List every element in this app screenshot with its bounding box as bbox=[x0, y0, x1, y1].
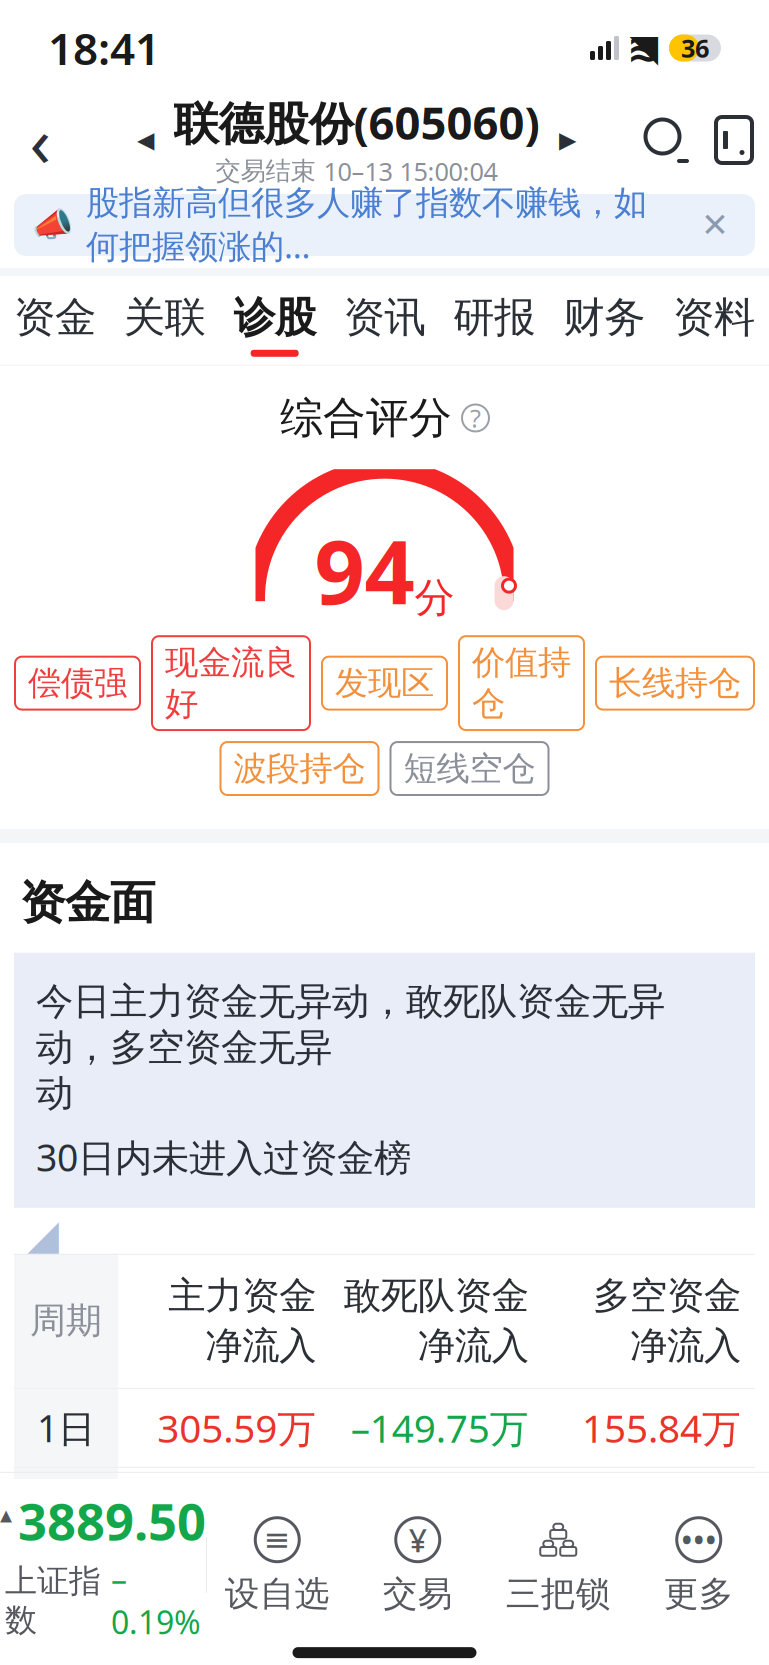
staticText: 305.59万 bbox=[157, 1402, 316, 1453]
staticText: 5日 bbox=[37, 1561, 95, 1611]
button[interactable]: Back bbox=[0, 100, 80, 180]
staticText: 三把锁 bbox=[506, 1573, 611, 1615]
staticText: –0.19% bbox=[111, 1558, 201, 1643]
staticText: 周期 bbox=[30, 1299, 102, 1343]
staticText: 1日 bbox=[37, 1403, 95, 1453]
button[interactable]: 诊股 bbox=[220, 276, 330, 365]
staticText: 研报 bbox=[453, 292, 535, 343]
staticText: ≡ bbox=[264, 1521, 291, 1558]
staticText: 综合评分 bbox=[280, 392, 452, 444]
staticText: ¥ bbox=[409, 1518, 427, 1561]
staticText: ◢ bbox=[18, 1208, 59, 1268]
staticText: 交易 bbox=[383, 1573, 453, 1615]
staticText: ✕ bbox=[701, 206, 729, 244]
button[interactable]: About score bbox=[462, 404, 489, 431]
staticText: 净流入 bbox=[205, 1323, 316, 1369]
staticText: 2555.11万 bbox=[560, 1560, 741, 1611]
staticText: ◥ bbox=[629, 27, 658, 69]
button[interactable]: 资金 bbox=[0, 276, 110, 365]
staticText: 90.79万 bbox=[392, 1639, 529, 1665]
staticText: 36 bbox=[681, 31, 709, 65]
staticText: ‹ bbox=[29, 94, 50, 186]
button[interactable]: Search bbox=[633, 104, 699, 176]
staticText: 1686.86万 bbox=[560, 1481, 741, 1532]
button[interactable]: Close banner bbox=[693, 203, 737, 247]
staticText: 关联 bbox=[124, 292, 206, 343]
button[interactable]: 财务 bbox=[549, 276, 659, 365]
staticText: 敢死队资金 bbox=[344, 1273, 529, 1319]
staticText: ◀ bbox=[137, 127, 154, 153]
staticText: –159.25万 bbox=[351, 1560, 529, 1611]
staticText: 联德股份(605060) bbox=[173, 92, 539, 152]
staticText: 资料 bbox=[673, 292, 755, 343]
staticText: ▶ bbox=[559, 127, 576, 153]
staticText: 10–13 15:00:04 bbox=[323, 154, 497, 188]
staticText: 2714.36万 bbox=[135, 1560, 316, 1611]
staticText: 长线持仓 bbox=[609, 663, 741, 703]
staticText: 上证指数 bbox=[5, 1561, 101, 1640]
staticText: 1.05亿 bbox=[201, 1639, 316, 1665]
staticText: 94 bbox=[314, 512, 414, 629]
staticText: 30日内未进入过资金榜 bbox=[36, 1132, 411, 1182]
staticText: 净流入 bbox=[418, 1323, 529, 1369]
staticText: –149.75万 bbox=[351, 1402, 529, 1453]
staticText: 短线空仓 bbox=[403, 748, 535, 789]
staticText: 财务 bbox=[563, 292, 645, 343]
staticText: 主力资金 bbox=[168, 1273, 316, 1319]
staticText: 资金面 bbox=[20, 875, 155, 931]
button[interactable]: Previous stock bbox=[117, 105, 173, 175]
staticText: ≋ bbox=[627, 25, 661, 71]
button[interactable]: 资讯 bbox=[330, 276, 439, 365]
staticText: 资讯 bbox=[343, 292, 425, 343]
staticText: 股指新高但很多人赚了指数不赚钱，如何把握领涨的… bbox=[86, 182, 647, 268]
staticText: 155.84万 bbox=[582, 1402, 741, 1453]
staticText: 波段持仓 bbox=[233, 748, 365, 789]
staticText: ▴ bbox=[0, 1501, 12, 1528]
staticText: 诊股 bbox=[234, 292, 316, 343]
button[interactable]: 关联 bbox=[110, 276, 220, 365]
staticText: 1671.76万 bbox=[135, 1481, 316, 1532]
staticText: 净流入 bbox=[630, 1323, 741, 1369]
staticText: ••• bbox=[681, 1518, 717, 1561]
staticText: 资金 bbox=[14, 292, 96, 343]
button[interactable]: 上证指数 3889.50 bbox=[0, 1487, 206, 1643]
staticText: 📣 bbox=[32, 206, 74, 244]
button[interactable]: Next stock bbox=[539, 105, 595, 175]
staticText: 偿债强 bbox=[28, 663, 127, 703]
button[interactable]: ¥ bbox=[347, 1515, 488, 1615]
staticText: 3889.50 bbox=[18, 1487, 206, 1554]
staticText: 更多 bbox=[664, 1573, 734, 1615]
button[interactable]: 研报 bbox=[439, 276, 549, 365]
staticText: 交易结束 bbox=[215, 155, 315, 187]
staticText: ? bbox=[470, 401, 481, 435]
button[interactable]: ••• bbox=[628, 1515, 769, 1615]
button[interactable]: ≡ bbox=[207, 1515, 347, 1615]
staticText: 18:41 bbox=[48, 19, 160, 77]
staticText: 3日 bbox=[37, 1482, 95, 1532]
button[interactable]: 资料 bbox=[659, 276, 769, 365]
staticText: 价值持仓 bbox=[472, 642, 571, 724]
button[interactable]: Layout bbox=[699, 104, 769, 176]
staticText: 发现区 bbox=[335, 663, 434, 703]
staticText: 现金流良好 bbox=[165, 642, 297, 724]
staticText: 分 bbox=[414, 573, 454, 623]
staticText: 多空资金 bbox=[593, 1273, 741, 1319]
button[interactable]: 三把锁 bbox=[488, 1515, 628, 1615]
staticText: 设自选 bbox=[225, 1573, 330, 1615]
staticText: 今日主力资金无异动，敢死队资金无异动，多空资金无异 动 bbox=[36, 979, 665, 1116]
staticText: 15.10万 bbox=[392, 1481, 529, 1532]
